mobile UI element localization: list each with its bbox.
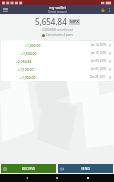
- button[interactable]: Home: [53, 174, 61, 182]
- staticText: Device account: [48, 10, 67, 14]
- staticText: my wallet: [49, 5, 66, 10]
- button[interactable]: Recent apps: [84, 174, 92, 182]
- staticText: +1,500.00: [21, 51, 37, 56]
- button[interactable]: Open navigation drawer: [2, 6, 9, 13]
- button[interactable]: +1,000.00: [1, 41, 113, 49]
- staticText: Jan 12, 2018: [91, 51, 106, 55]
- staticText: 0.00000000 unconfirmed: [42, 28, 73, 32]
- button[interactable]: Back: [23, 174, 31, 182]
- staticText: +1,100.00: [18, 67, 34, 72]
- button[interactable]: +1,500.00: [1, 49, 113, 57]
- button[interactable]: MPX: [69, 19, 80, 25]
- staticText: RECEIVE: [22, 166, 36, 171]
- button[interactable]: SEND: [58, 164, 113, 173]
- staticText: SEND: [81, 166, 90, 171]
- button[interactable]: Lock wallet: [99, 6, 106, 13]
- staticText: +2,054.84: [16, 59, 32, 64]
- staticText: +1,000.00: [25, 43, 41, 48]
- button[interactable]: Connected to 4 peers: [42, 33, 73, 37]
- staticText: Jan 14, 2018: [91, 43, 106, 47]
- staticText: Connected to 4 peers: [46, 33, 73, 37]
- staticText: Jan 05, 2018: [91, 67, 106, 71]
- button[interactable]: +2,054.84: [1, 57, 113, 65]
- button[interactable]: More options: [106, 6, 113, 13]
- button[interactable]: RECEIVE: [1, 164, 56, 173]
- button[interactable]: +1,000.00: [1, 73, 113, 81]
- staticText: MPX: [70, 19, 79, 25]
- staticText: 5,654.84: [35, 16, 67, 27]
- staticText: Dec 28, 2017: [90, 75, 106, 79]
- button[interactable]: +1,100.00: [1, 65, 113, 73]
- staticText: Jan 09, 2018: [91, 59, 106, 63]
- staticText: +1,000.00: [20, 75, 36, 80]
